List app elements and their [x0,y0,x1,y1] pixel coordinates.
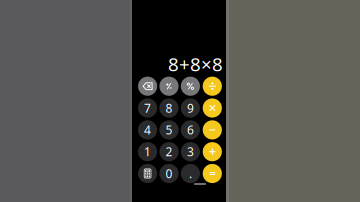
staticText: 3 [187,144,194,160]
button[interactable]: 2 [159,142,179,161]
button[interactable]: 1 [138,142,157,161]
staticText: 0 [165,165,172,181]
button[interactable]: Delete [138,77,157,96]
button[interactable]: Multiply [203,98,222,118]
staticText: 4 [144,122,151,138]
button[interactable]: 7 [138,98,157,118]
staticText: 7 [144,100,151,116]
staticText: 6 [187,122,194,138]
button[interactable]: Calculator [138,164,157,183]
button[interactable]: 9 [181,98,200,118]
button[interactable]: 3 [181,142,200,161]
staticText: 8+8×8 [168,52,223,76]
button[interactable]: Plus [203,142,222,161]
staticText: 2 [165,144,172,160]
staticText: 9 [187,100,194,116]
button[interactable]: Toggle sign [159,77,179,96]
staticText: 5 [165,122,172,138]
button[interactable]: Equals [203,164,222,183]
button[interactable]: 0 [159,164,179,183]
button[interactable]: 4 [138,120,157,139]
button[interactable]: Minus [203,120,222,139]
button[interactable]: 5 [159,120,179,139]
button[interactable]: 8 [159,98,179,118]
staticText: . [189,165,192,181]
staticText: 8 [165,100,172,116]
button[interactable]: 6 [181,120,200,139]
staticText: 1 [144,144,151,160]
button[interactable]: Percent [181,77,200,96]
button[interactable]: . [181,164,200,183]
button[interactable]: Divide [203,77,222,96]
